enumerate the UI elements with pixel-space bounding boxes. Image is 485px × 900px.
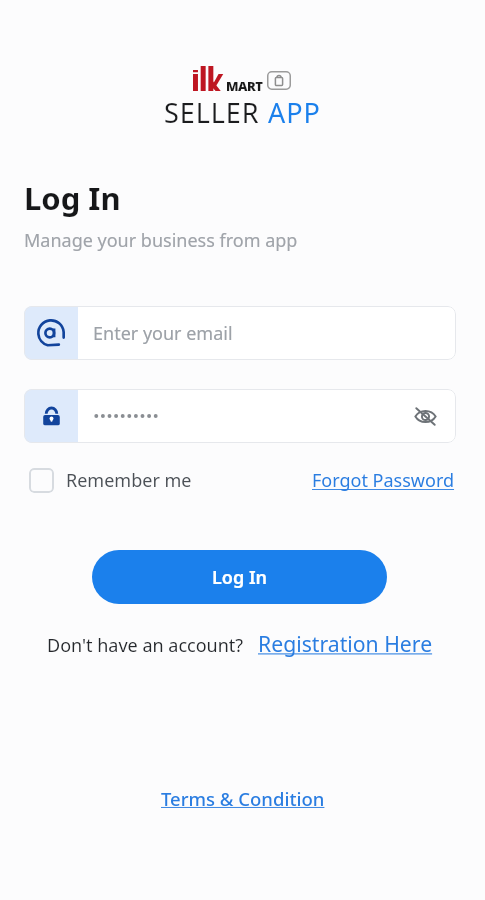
button[interactable]: Forgot Password [312, 468, 455, 493]
staticText: APP [268, 94, 321, 131]
staticText: Log In [24, 177, 121, 219]
staticText: Remember me [66, 468, 192, 493]
button[interactable]: Enter your email [24, 306, 456, 360]
button[interactable]: Log In [92, 550, 387, 604]
button[interactable]: Registration Here [258, 629, 433, 658]
staticText: Log In [212, 565, 268, 590]
button[interactable]: Terms & Condition [161, 786, 325, 811]
button[interactable]: Show password [24, 389, 456, 443]
staticText: MART [226, 77, 263, 95]
button[interactable]: Show password [403, 394, 447, 438]
staticText: Enter your email [93, 321, 233, 346]
staticText: SELLER [164, 94, 268, 131]
staticText: Manage your business from app [24, 228, 298, 253]
button[interactable]: Remember me [29, 468, 192, 493]
staticText: Don't have an account? [47, 633, 244, 658]
